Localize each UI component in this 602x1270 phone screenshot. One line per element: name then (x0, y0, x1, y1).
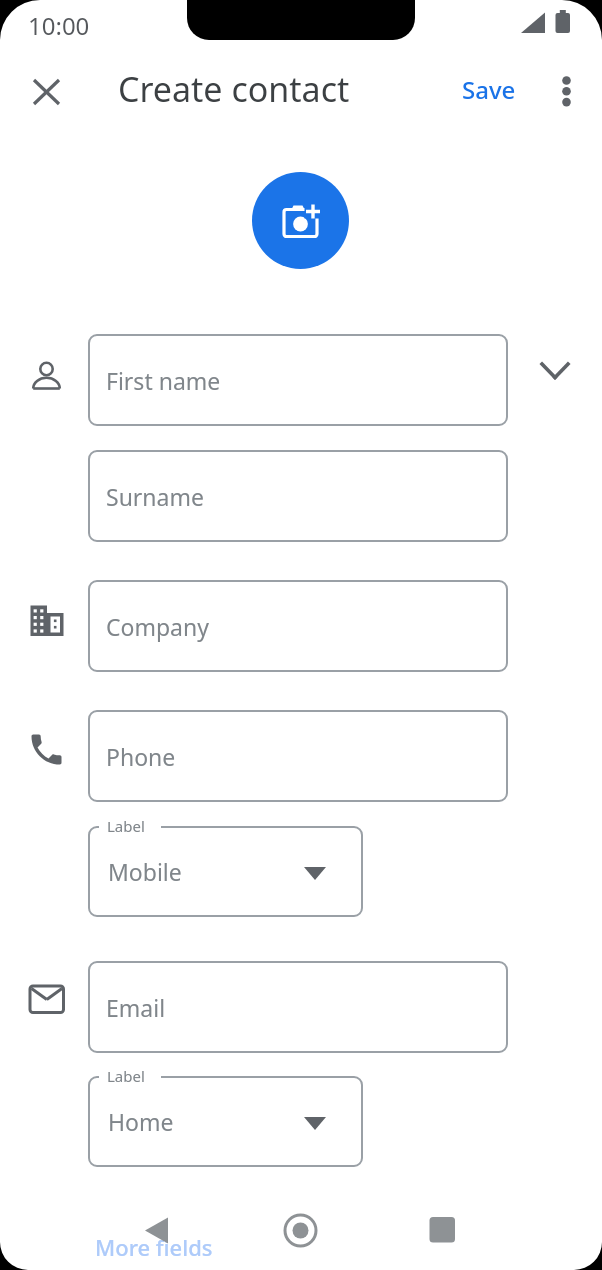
button[interactable] (24, 69, 69, 114)
staticText: More fields (95, 1232, 213, 1258)
button[interactable] (533, 349, 577, 393)
button[interactable] (548, 69, 584, 114)
button[interactable] (135, 1207, 181, 1253)
staticText: Label (107, 1066, 145, 1086)
staticText: Email (106, 992, 166, 1023)
button[interactable] (420, 1207, 466, 1253)
staticText: 10:00 (28, 9, 90, 39)
staticText: Create contact (118, 66, 350, 111)
button[interactable]: First name (88, 334, 508, 426)
staticText: Surname (106, 481, 204, 512)
button[interactable] (252, 172, 349, 269)
button[interactable] (278, 1207, 324, 1253)
button[interactable]: Surname (88, 450, 508, 542)
staticText: Company (106, 611, 209, 642)
button[interactable]: Company (88, 580, 508, 672)
button[interactable]: Phone (88, 710, 508, 802)
staticText: Save (462, 73, 516, 106)
button[interactable]: More fields (95, 1232, 213, 1258)
staticText: Mobile (108, 856, 182, 887)
button[interactable]: Email (88, 961, 508, 1053)
button[interactable]: Mobile (88, 826, 363, 917)
staticText: Label (107, 816, 145, 836)
button[interactable]: Home (88, 1076, 363, 1167)
staticText: Home (108, 1106, 174, 1137)
staticText: Phone (106, 741, 176, 772)
button[interactable]: Save (462, 68, 516, 111)
staticText: First name (106, 365, 221, 396)
